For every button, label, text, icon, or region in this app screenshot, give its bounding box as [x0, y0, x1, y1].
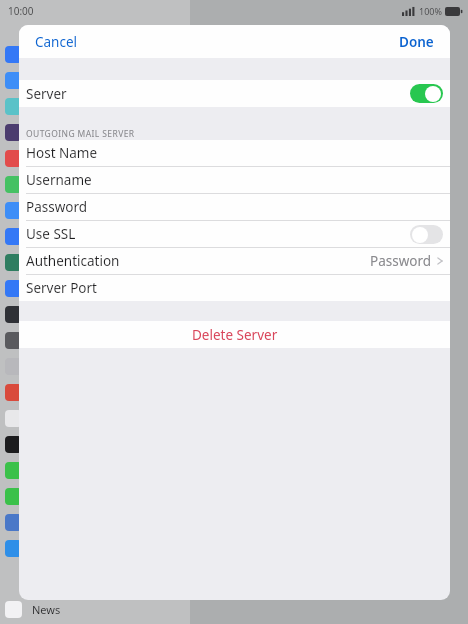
- button[interactable]: Delete Server: [19, 321, 450, 348]
- staticText: Done: [399, 33, 434, 51]
- button[interactable]: Username: [19, 166, 450, 193]
- staticText: Username: [26, 171, 92, 189]
- staticText: Cancel: [35, 33, 78, 51]
- button[interactable]: Toggle on: [410, 84, 443, 103]
- button[interactable]: Authentication: [19, 247, 450, 274]
- staticText: News: [32, 602, 61, 617]
- button[interactable]: Toggle off: [410, 225, 443, 244]
- staticText: Server: [26, 85, 67, 103]
- button[interactable]: Done: [383, 27, 450, 57]
- staticText: 100%: [419, 5, 442, 17]
- staticText: Authentication: [26, 252, 120, 270]
- button[interactable]: Password: [19, 193, 450, 220]
- staticText: Password: [26, 198, 88, 216]
- staticText: OUTGOING MAIL SERVER: [26, 128, 135, 140]
- button[interactable]: Use SSL: [19, 220, 450, 247]
- button[interactable]: Server Port: [19, 274, 450, 301]
- button[interactable]: Cancel: [19, 27, 94, 57]
- button[interactable]: Server: [19, 80, 450, 107]
- staticText: Password: [370, 252, 432, 270]
- staticText: Server Port: [26, 279, 97, 297]
- staticText: Delete Server: [192, 326, 278, 344]
- staticText: Host Name: [26, 144, 98, 162]
- staticText: 10:00: [8, 4, 34, 18]
- staticText: Use SSL: [26, 225, 76, 243]
- button[interactable]: Host Name: [19, 140, 450, 166]
